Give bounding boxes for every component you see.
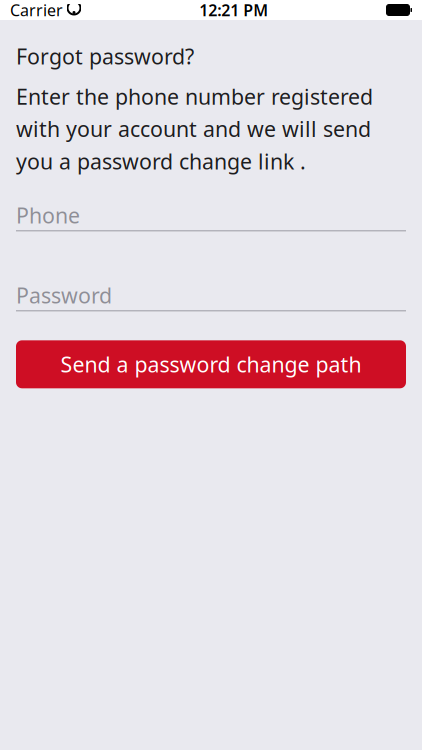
staticText: Password: [16, 281, 112, 309]
staticText: Phone: [16, 201, 80, 229]
staticText: 12:21 PM: [199, 0, 268, 21]
staticText: Enter the phone number registered with y…: [16, 82, 373, 175]
button[interactable]: Send a password change path: [16, 340, 406, 388]
staticText: Send a password change path: [60, 350, 361, 378]
staticText: Forgot password?: [16, 42, 194, 70]
staticText: Carrier: [10, 0, 63, 21]
